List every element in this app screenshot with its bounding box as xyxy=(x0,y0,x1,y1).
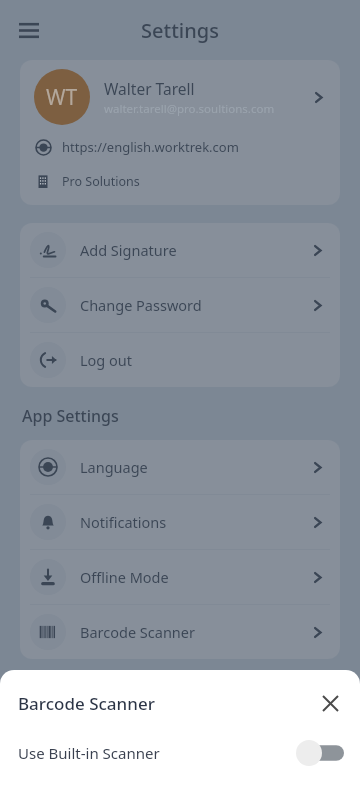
staticText: Add Signature xyxy=(80,240,309,260)
button[interactable]: Log out xyxy=(20,333,340,387)
staticText: Pro Solutions xyxy=(62,173,140,190)
button[interactable]: Change Password xyxy=(20,278,340,332)
button[interactable]: Offline Mode xyxy=(20,550,340,604)
staticText: Notifications xyxy=(80,512,309,532)
button[interactable]: Barcode Scanner xyxy=(20,605,340,659)
staticText: walter.tarell@pro.soultions.com xyxy=(104,101,275,117)
button[interactable]: Add Signature xyxy=(20,223,340,277)
staticText: Log out xyxy=(80,350,326,370)
staticText: Barcode Scanner xyxy=(18,692,313,715)
staticText: Walter Tarell xyxy=(104,78,195,99)
button[interactable]: Notifications xyxy=(20,495,340,549)
staticText: Barcode Scanner xyxy=(80,622,309,642)
button[interactable]: Open navigation menu xyxy=(9,10,49,50)
button[interactable]: Use Built-in Scanner xyxy=(18,740,344,766)
button[interactable]: Language xyxy=(20,440,340,494)
staticText: App Settings xyxy=(22,405,119,427)
staticText: Settings xyxy=(141,17,219,44)
staticText: WT xyxy=(46,83,78,112)
staticText: Use Built-in Scanner xyxy=(18,743,296,763)
staticText: Language xyxy=(80,457,309,477)
staticText: Change Password xyxy=(80,295,309,315)
staticText: Offline Mode xyxy=(80,567,309,587)
button[interactable]: https://english.worktrek.com xyxy=(20,131,340,163)
button[interactable]: Close xyxy=(313,686,347,720)
staticText: https://english.worktrek.com xyxy=(62,138,239,156)
button[interactable]: WT xyxy=(20,60,340,131)
